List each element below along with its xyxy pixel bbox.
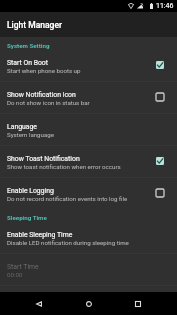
staticText: Start On Boot	[7, 59, 48, 67]
button[interactable]: Toggle setting	[154, 187, 166, 199]
button[interactable]: Enable Sleeping Time	[0, 222, 177, 253]
button[interactable]: Start On Boot	[0, 50, 177, 81]
staticText: Enable Logging	[7, 187, 54, 195]
staticText: Do not show icon in status bar	[7, 99, 90, 106]
button[interactable]: Enable Logging	[0, 178, 177, 209]
staticText: System Setting	[7, 42, 50, 49]
staticText: Enable Sleeping Time	[7, 231, 73, 239]
staticText: Disable LED notification during sleeping…	[7, 239, 129, 246]
button[interactable]: Show Toast Notification	[0, 146, 177, 177]
staticText: Show Toast Notification	[7, 155, 80, 163]
button[interactable]: Toggle setting	[154, 155, 166, 167]
button[interactable]: Language	[0, 114, 177, 145]
button[interactable]: Back	[27, 292, 51, 315]
staticText: Start when phone boots up	[7, 67, 81, 74]
staticText: Show toast notification when error occur…	[7, 163, 121, 170]
staticText: Sleeping Time	[7, 214, 47, 221]
staticText: 11:46	[156, 2, 174, 10]
staticText: Show Notification Icon	[7, 91, 76, 99]
button[interactable]: Recent apps	[126, 292, 150, 315]
button[interactable]: Toggle setting	[154, 91, 166, 103]
staticText: System language	[7, 131, 54, 138]
staticText: Do not record notification events into l…	[7, 195, 128, 202]
button[interactable]: Home	[77, 292, 101, 315]
staticText: Light Manager	[7, 20, 62, 30]
button[interactable]: Toggle setting	[154, 59, 166, 71]
staticText: 00:00	[7, 271, 23, 278]
staticText: Start Time	[7, 263, 39, 271]
staticText: Language	[7, 123, 37, 131]
button[interactable]: Show Notification Icon	[0, 82, 177, 113]
button[interactable]: Start Time	[0, 254, 177, 285]
